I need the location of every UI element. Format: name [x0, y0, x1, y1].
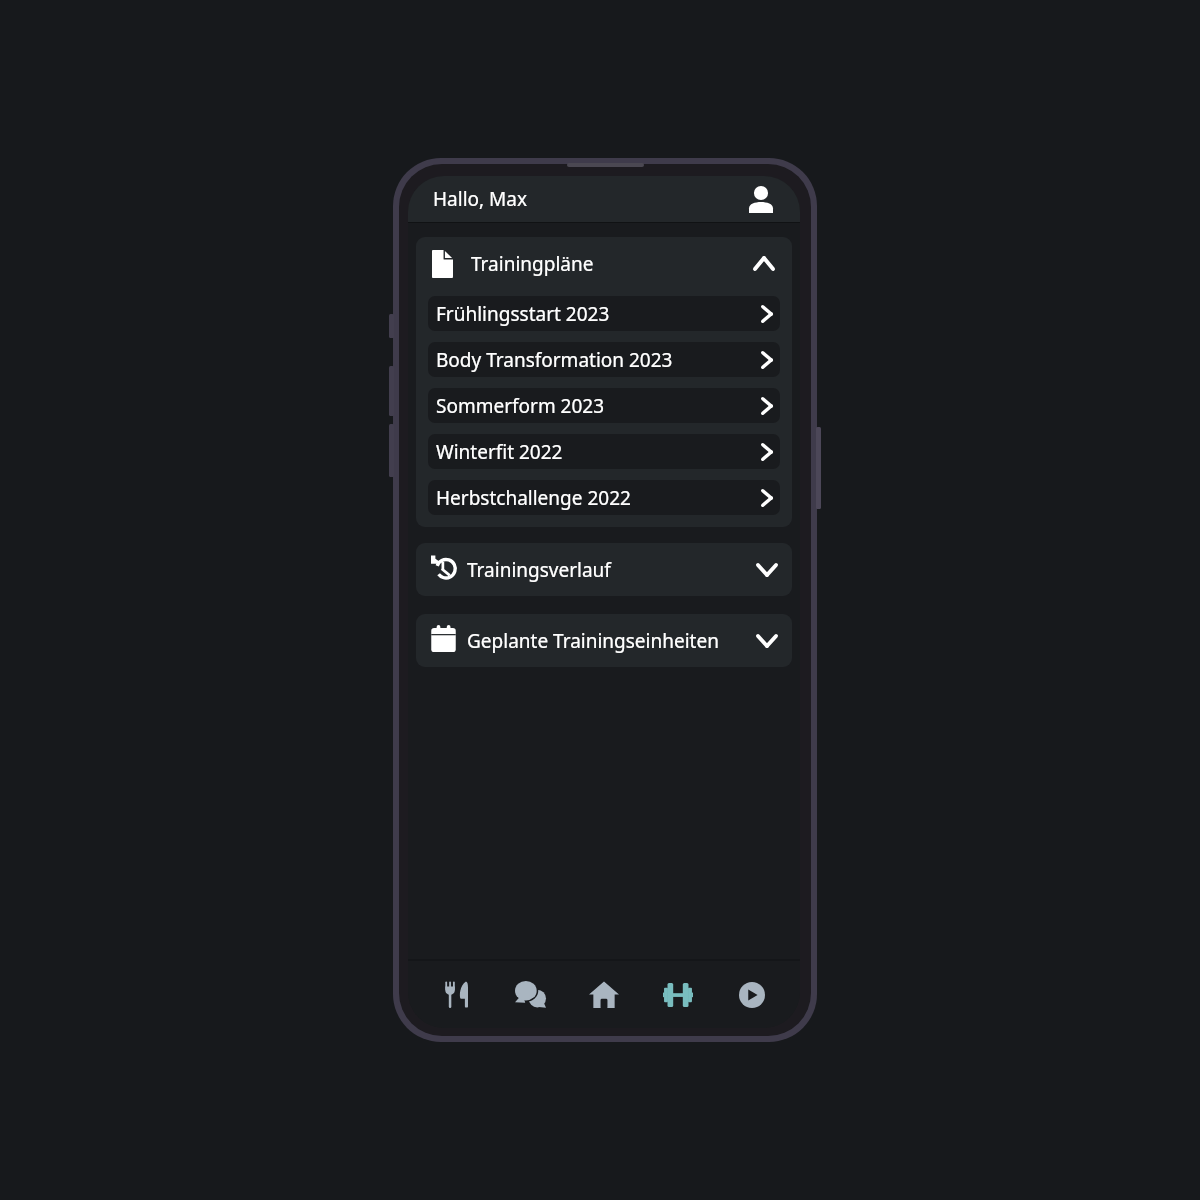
button[interactable]: Geplante Trainingseinheiten: [416, 614, 792, 667]
button[interactable]: Herbstchallenge 2022: [428, 480, 780, 515]
button[interactable]: Trainingpläne: [416, 237, 792, 290]
button[interactable]: Training: [641, 961, 715, 1028]
button[interactable]: Body Transformation 2023: [428, 342, 780, 377]
staticText: Trainingsverlauf: [467, 557, 611, 583]
staticText: Hallo, Max: [433, 186, 528, 212]
button[interactable]: Nachrichten: [493, 961, 567, 1028]
staticText: Winterfit 2022: [436, 439, 563, 465]
staticText: Geplante Trainingseinheiten: [467, 628, 719, 654]
staticText: Body Transformation 2023: [436, 347, 673, 373]
button[interactable]: Profil: [744, 182, 778, 216]
staticText: Trainingpläne: [471, 251, 594, 277]
button[interactable]: Ernährung: [419, 961, 493, 1028]
button[interactable]: Wiedergabe: [715, 961, 789, 1028]
staticText: Frühlingsstart 2023: [436, 301, 610, 327]
button[interactable]: Sommerform 2023: [428, 388, 780, 423]
button[interactable]: Start: [567, 961, 641, 1028]
staticText: Herbstchallenge 2022: [436, 485, 631, 511]
button[interactable]: Frühlingsstart 2023: [428, 296, 780, 331]
button[interactable]: Trainingsverlauf: [416, 543, 792, 596]
button[interactable]: Winterfit 2022: [428, 434, 780, 469]
staticText: Sommerform 2023: [436, 393, 605, 419]
